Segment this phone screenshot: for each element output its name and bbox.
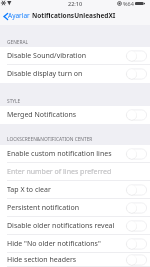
button[interactable]: Merged Notifications [0,106,150,124]
staticText: Disable Sound/vibration [7,51,124,61]
staticText: Tap X to clear [7,185,124,195]
button[interactable]: Toggle setting [126,68,147,80]
staticText: STYLE [7,98,21,105]
button[interactable]: Toggle setting [126,254,147,266]
staticText: Persistent notification [7,203,124,213]
staticText: Disable older notifications reveal [7,221,124,231]
button[interactable]: Toggle setting [126,50,147,62]
button[interactable]: Disable display turn on [0,65,150,83]
staticText: Merged Notifications [7,110,124,120]
staticText: NotificationsUnleashedXI [32,11,116,20]
button[interactable]: Enter number of lines preferred [0,163,150,181]
button[interactable]: Toggle setting [126,109,147,121]
button[interactable]: Toggle setting [126,184,147,196]
staticText: GENERAL [7,39,29,46]
button[interactable]: Toggle setting [126,238,147,250]
button[interactable]: Toggle setting [126,220,147,232]
button[interactable]: Hide "No older notifications" [0,235,150,253]
staticText: Disable display turn on [7,69,124,79]
button[interactable]: Toggle setting [126,202,147,214]
staticText: 22:10 [68,0,83,7]
staticText: Enter number of lines preferred [7,167,112,177]
button[interactable]: Persistent notification [0,199,150,217]
button[interactable]: Ayarlar [0,11,31,20]
staticText: LOCKSCREEN&NOTIFICATION CENTER [7,136,93,143]
staticText: Hide "No older notifications" [7,239,124,249]
button[interactable]: Hide section headers [0,253,150,267]
button[interactable]: Tap X to clear [0,181,150,199]
staticText: %64 [123,0,134,7]
staticText: Hide section headers [7,255,124,265]
button[interactable]: Toggle setting [126,148,147,160]
button[interactable]: Disable Sound/vibration [0,47,150,65]
staticText: Ayarlar [8,11,30,20]
staticText: Enable custom notification lines [7,149,124,159]
button[interactable]: Enable custom notification lines [0,145,150,163]
button[interactable]: Disable older notifications reveal [0,217,150,235]
